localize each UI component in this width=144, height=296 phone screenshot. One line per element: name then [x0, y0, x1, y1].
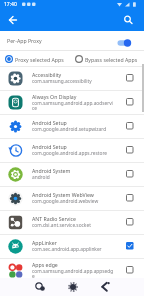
staticText: com.google.android.setupwizard — [32, 126, 107, 133]
button[interactable]: Always On Display — [0, 90, 144, 114]
button[interactable]: Proxy selected Apps — [5, 55, 64, 63]
button[interactable]: ANT Radio Service — [0, 210, 144, 234]
button[interactable]: Android Setup — [0, 138, 144, 162]
staticText: com.dsi.ant.service.socket — [32, 222, 91, 229]
button[interactable]: Per-App Proxy — [0, 31, 144, 50]
button[interactable]: Accessibility — [0, 66, 144, 90]
staticText: Android System — [32, 167, 71, 174]
staticText: Android System WebView — [32, 191, 94, 198]
staticText: com.samsung.accessibility — [32, 78, 92, 85]
staticText: com.samsung.android.app.appsedg e — [32, 268, 114, 280]
staticText: android — [32, 174, 50, 181]
button[interactable] — [4, 12, 21, 29]
staticText: Bypass selected Apps — [85, 56, 138, 63]
staticText: Android Setup — [32, 119, 67, 126]
staticText: com.sec.android.app.applinker — [32, 246, 102, 253]
button[interactable]: Android System — [0, 162, 144, 186]
button[interactable]: Bypass selected Apps — [75, 55, 138, 63]
staticText: com.google.android.apps.restore — [32, 150, 108, 157]
staticText: AppLinker — [32, 239, 57, 246]
staticText: com.samsung.android.app.aodservi ce — [32, 100, 113, 112]
staticText: Accessibility — [32, 71, 62, 78]
button[interactable]: Apps edge — [0, 258, 144, 282]
button[interactable]: AppLinker — [0, 234, 144, 258]
staticText: Android Setup — [32, 143, 67, 150]
button[interactable] — [96, 278, 144, 296]
staticText: Per-App Proxy — [7, 37, 42, 44]
staticText: com.google.android.webview — [32, 198, 99, 205]
staticText: Proxy selected Apps — [15, 56, 64, 63]
button[interactable] — [0, 278, 48, 296]
button[interactable] — [119, 12, 136, 29]
staticText: Always On Display — [32, 93, 77, 100]
button[interactable] — [48, 278, 96, 296]
button[interactable]: Android System WebView — [0, 186, 144, 210]
staticText: 17:40 — [4, 1, 17, 8]
staticText: ANT Radio Service — [32, 215, 76, 222]
button[interactable]: Android Setup — [0, 114, 144, 138]
staticText: Apps edge — [32, 261, 58, 268]
